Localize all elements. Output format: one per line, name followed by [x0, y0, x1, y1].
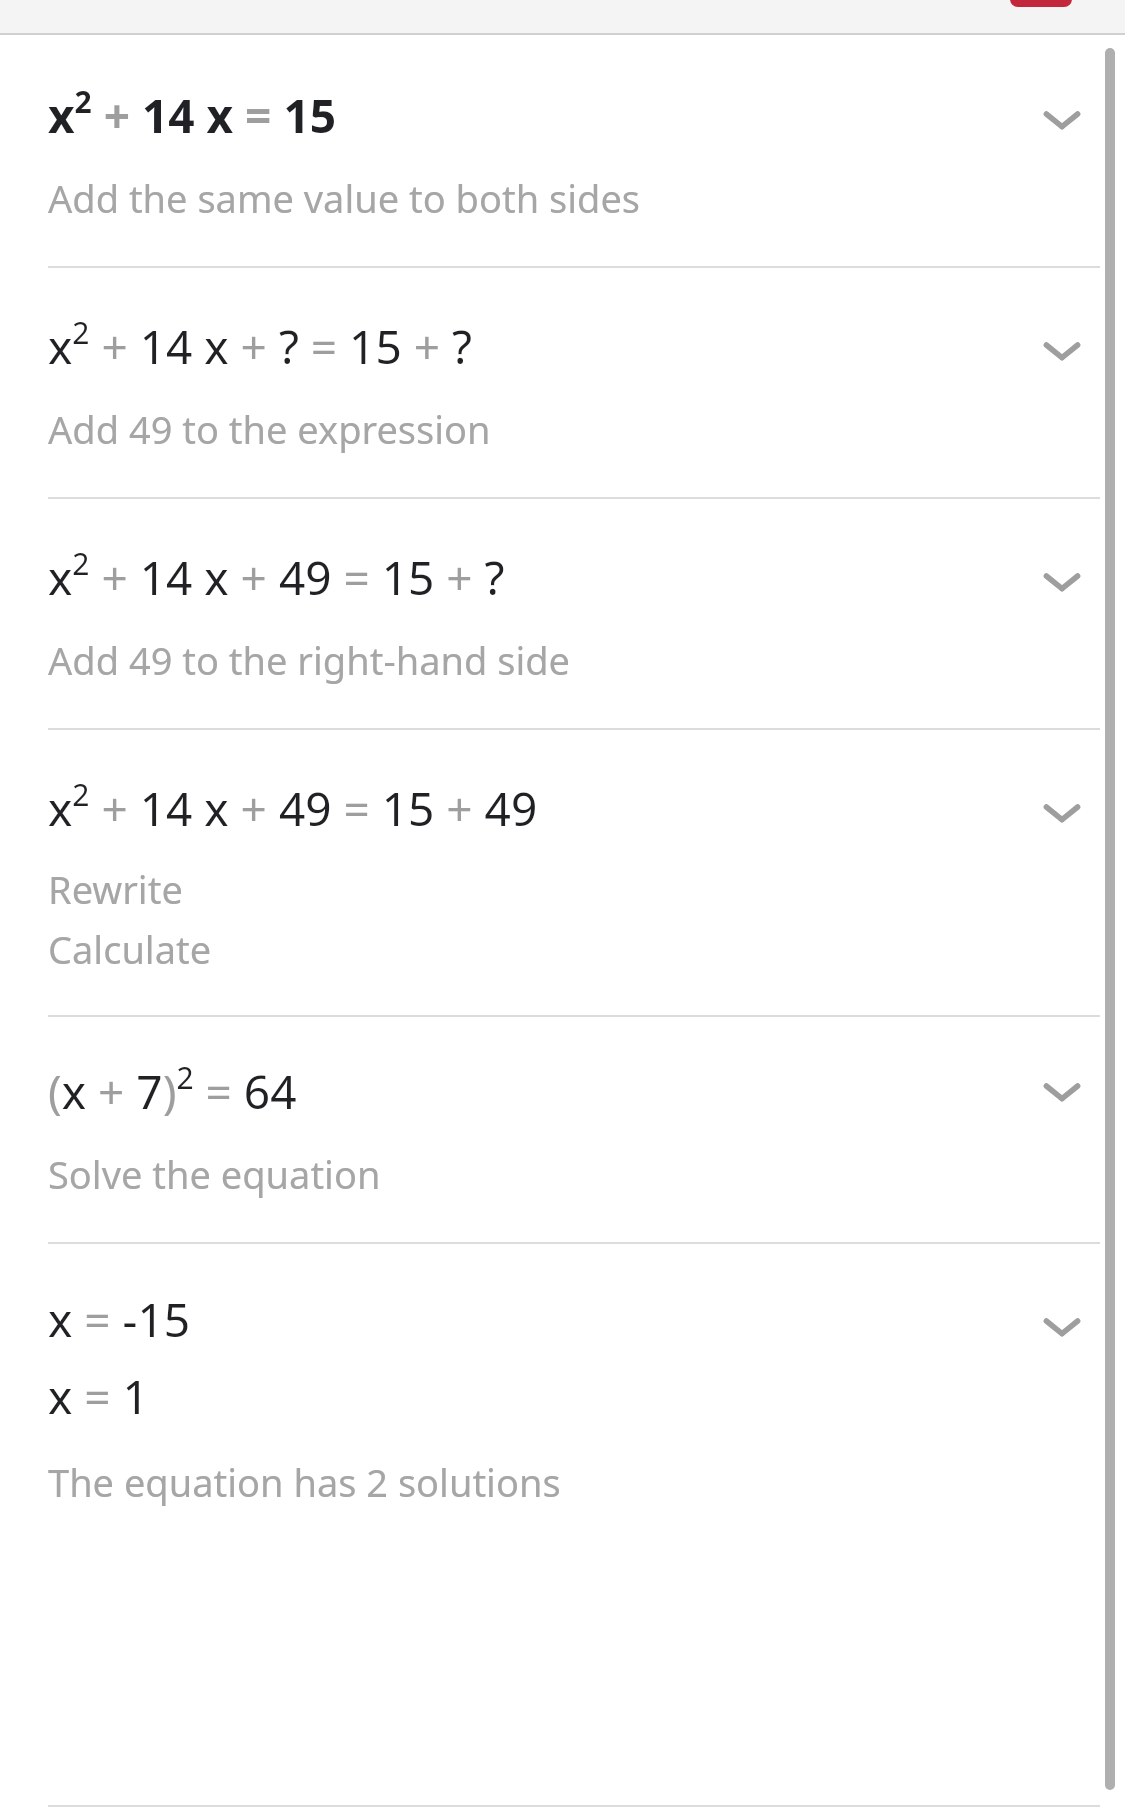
button[interactable]: Expand step — [1024, 557, 1100, 607]
staticText: x = -15 — [48, 1288, 191, 1351]
button[interactable]: Expand step — [1024, 95, 1100, 145]
button[interactable]: Expand step — [1024, 1302, 1100, 1352]
staticText: Add the same value to both sides — [48, 172, 641, 224]
button[interactable]: x2 + 14 x + 49 = 15 + ? — [0, 499, 1125, 728]
button[interactable]: x = -15 — [0, 1244, 1125, 1508]
button[interactable]: x2 + 14 x + 49 = 15 + 49 — [0, 730, 1125, 1015]
staticText: x2 + 14 x = 15 — [48, 81, 337, 146]
staticText: Solve the equation — [48, 1148, 381, 1200]
staticText: x = 1 — [48, 1365, 149, 1428]
staticText: The equation has 2 solutions — [48, 1456, 561, 1508]
staticText: x2 + 14 x + ? = 15 + ? — [48, 312, 472, 377]
staticText: Rewrite — [48, 863, 183, 915]
staticText: Add 49 to the right-hand side — [48, 634, 571, 686]
button[interactable]: (x + 7)2 = 64 — [0, 1017, 1125, 1242]
button[interactable]: Expand step — [1024, 788, 1100, 838]
staticText: (x + 7)2 = 64 — [48, 1057, 297, 1122]
staticText: x2 + 14 x + 49 = 15 + ? — [48, 543, 505, 608]
staticText: Calculate — [48, 923, 212, 975]
staticText: Add 49 to the expression — [48, 403, 491, 455]
button[interactable]: x2 + 14 x + ? = 15 + ? — [0, 268, 1125, 497]
button[interactable]: x2 + 14 x = 15 — [0, 35, 1125, 266]
staticText: x2 + 14 x + 49 = 15 + 49 — [48, 774, 538, 839]
button[interactable]: Expand step — [1024, 1067, 1100, 1117]
button[interactable]: Expand step — [1024, 326, 1100, 376]
